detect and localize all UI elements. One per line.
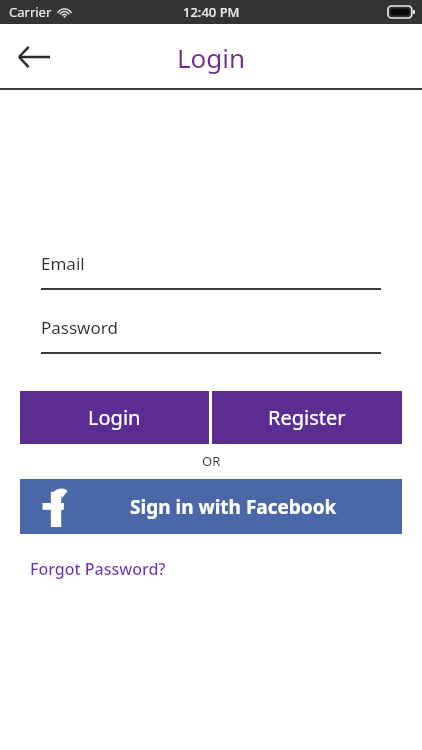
- staticText: Carrier: [9, 3, 52, 21]
- staticText: Login: [177, 40, 246, 75]
- staticText: Forgot Password?: [30, 558, 166, 580]
- button[interactable]: Register: [212, 391, 402, 444]
- button[interactable]: Sign in with Facebook: [20, 479, 402, 534]
- button[interactable]: Forgot Password?: [28, 554, 168, 584]
- button[interactable]: Password: [41, 316, 381, 354]
- staticText: Email: [41, 252, 85, 275]
- button[interactable]: Login: [20, 391, 209, 444]
- staticText: OR: [202, 452, 221, 470]
- button[interactable]: Back: [8, 32, 60, 82]
- button[interactable]: Email: [41, 252, 381, 290]
- staticText: Password: [41, 316, 118, 339]
- staticText: 12:40 PM: [183, 3, 240, 21]
- staticText: Register: [268, 404, 346, 431]
- staticText: Login: [88, 404, 141, 431]
- staticText: Sign in with Facebook: [130, 494, 337, 520]
